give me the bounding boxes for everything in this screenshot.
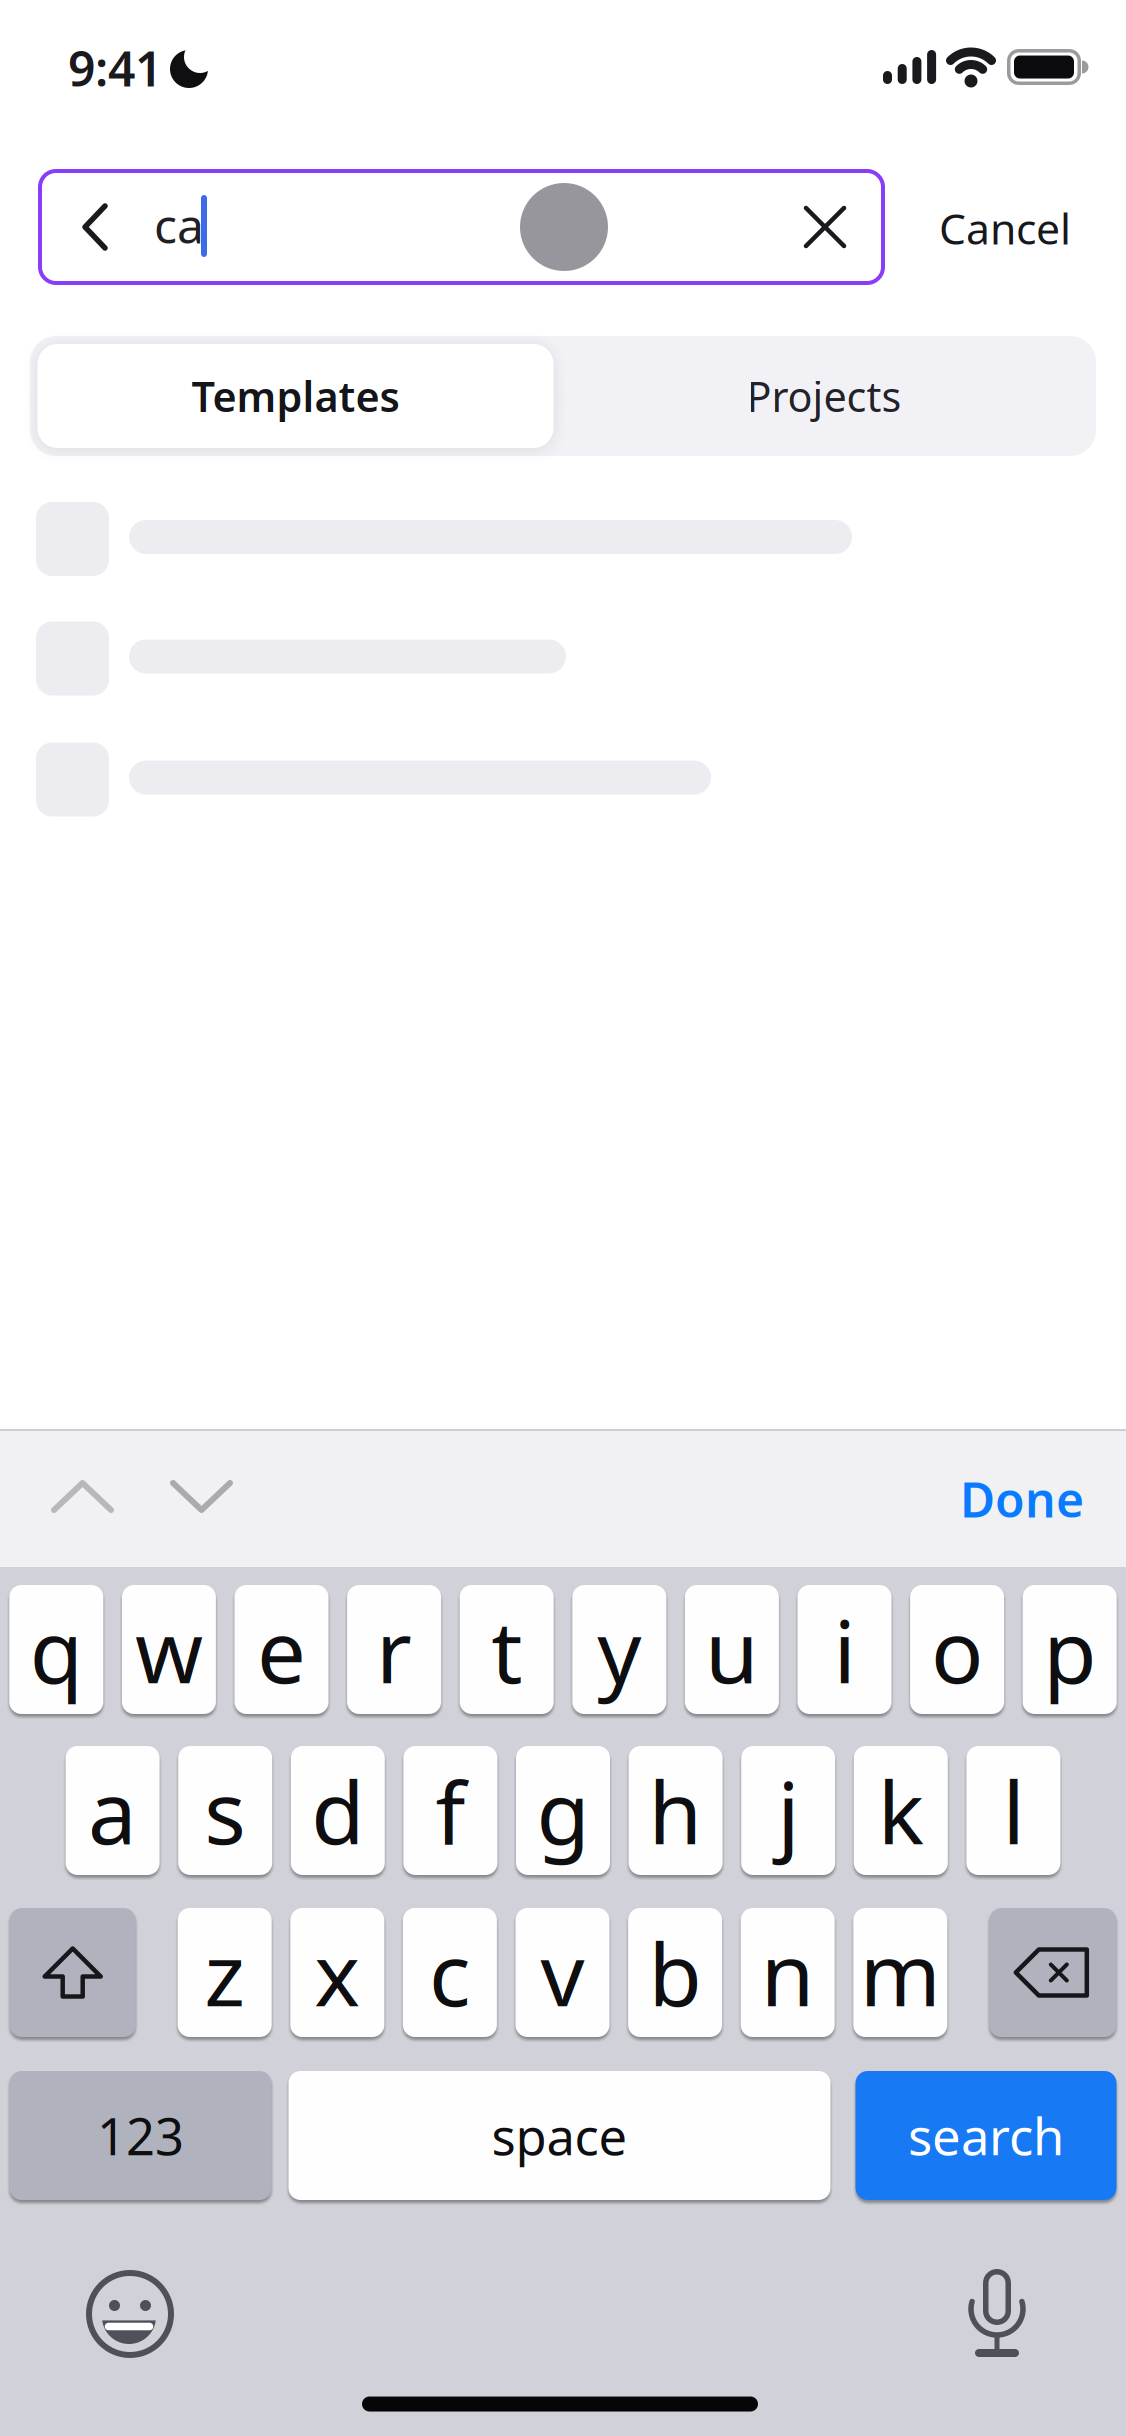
button[interactable]: u bbox=[685, 1585, 779, 1714]
button[interactable]: Templates bbox=[37, 344, 553, 448]
staticText: ca bbox=[154, 193, 204, 257]
staticText: b bbox=[649, 1915, 702, 2030]
staticText: h bbox=[649, 1753, 703, 1868]
button[interactable]: r bbox=[347, 1585, 441, 1714]
staticText: Projects bbox=[746, 369, 901, 423]
button[interactable]: z bbox=[178, 1908, 272, 2037]
button[interactable]: Emoji bbox=[85, 2269, 175, 2359]
button[interactable]: o bbox=[910, 1585, 1004, 1714]
staticText: l bbox=[1002, 1753, 1024, 1868]
staticText: space bbox=[491, 2102, 627, 2169]
staticText: j bbox=[777, 1753, 799, 1868]
staticText: s bbox=[204, 1753, 246, 1868]
staticText: v bbox=[540, 1915, 584, 2030]
button[interactable]: search bbox=[855, 2071, 1116, 2200]
staticText: a bbox=[88, 1753, 137, 1868]
staticText: z bbox=[204, 1915, 245, 2030]
button[interactable]: j bbox=[741, 1746, 835, 1875]
button[interactable]: Dictate bbox=[966, 2266, 1030, 2360]
button[interactable]: a bbox=[66, 1746, 160, 1875]
button[interactable]: y bbox=[572, 1585, 666, 1714]
staticText: i bbox=[833, 1592, 855, 1707]
button[interactable]: Shift bbox=[10, 1908, 136, 2037]
staticText: q bbox=[30, 1592, 83, 1707]
staticText: u bbox=[705, 1592, 759, 1707]
staticText: k bbox=[878, 1753, 924, 1868]
button[interactable]: k bbox=[854, 1746, 948, 1875]
button[interactable]: h bbox=[629, 1746, 723, 1875]
staticText: d bbox=[311, 1753, 364, 1868]
button[interactable]: v bbox=[515, 1908, 609, 2037]
button[interactable]: l bbox=[966, 1746, 1060, 1875]
button[interactable]: i bbox=[797, 1585, 891, 1714]
staticText: Templates bbox=[191, 369, 399, 423]
button[interactable]: 123 bbox=[9, 2071, 271, 2200]
staticText: f bbox=[435, 1753, 465, 1868]
button[interactable]: p bbox=[1023, 1585, 1117, 1714]
button[interactable]: m bbox=[853, 1908, 947, 2037]
staticText: y bbox=[597, 1592, 641, 1707]
staticText: search bbox=[908, 2102, 1064, 2169]
button[interactable]: d bbox=[291, 1746, 385, 1875]
button[interactable]: n bbox=[741, 1908, 835, 2037]
staticText: Done bbox=[960, 1467, 1084, 1531]
staticText: n bbox=[761, 1915, 815, 2030]
staticText: p bbox=[1043, 1592, 1096, 1707]
button[interactable]: space bbox=[288, 2071, 830, 2200]
button[interactable]: Delete bbox=[989, 1908, 1116, 2037]
button[interactable]: Clear text bbox=[800, 202, 850, 252]
staticText: 9:41 bbox=[68, 36, 162, 100]
button[interactable]: c bbox=[403, 1908, 497, 2037]
button[interactable]: s bbox=[178, 1746, 272, 1875]
button[interactable]: Projects bbox=[574, 344, 1074, 448]
staticText: m bbox=[860, 1915, 941, 2030]
button[interactable]: e bbox=[234, 1585, 328, 1714]
staticText: c bbox=[429, 1915, 471, 2030]
button[interactable]: t bbox=[460, 1585, 554, 1714]
button[interactable]: g bbox=[516, 1746, 610, 1875]
button[interactable]: x bbox=[290, 1908, 384, 2037]
staticText: w bbox=[135, 1592, 203, 1707]
staticText: o bbox=[931, 1592, 983, 1707]
staticText: r bbox=[376, 1592, 412, 1707]
staticText: Cancel bbox=[939, 200, 1071, 256]
button[interactable]: b bbox=[628, 1908, 722, 2037]
button[interactable]: Cancel bbox=[939, 200, 1071, 256]
staticText: t bbox=[491, 1592, 522, 1707]
button[interactable]: Back bbox=[75, 197, 115, 257]
button[interactable]: Done bbox=[960, 1467, 1084, 1531]
staticText: e bbox=[257, 1592, 306, 1707]
button[interactable]: f bbox=[403, 1746, 497, 1875]
button[interactable]: Next field bbox=[169, 1479, 234, 1515]
button[interactable]: q bbox=[9, 1585, 103, 1714]
staticText: 123 bbox=[97, 2102, 184, 2169]
staticText: x bbox=[314, 1915, 360, 2030]
button[interactable]: w bbox=[122, 1585, 216, 1714]
staticText: g bbox=[536, 1753, 589, 1868]
button[interactable]: Previous field bbox=[50, 1479, 115, 1515]
